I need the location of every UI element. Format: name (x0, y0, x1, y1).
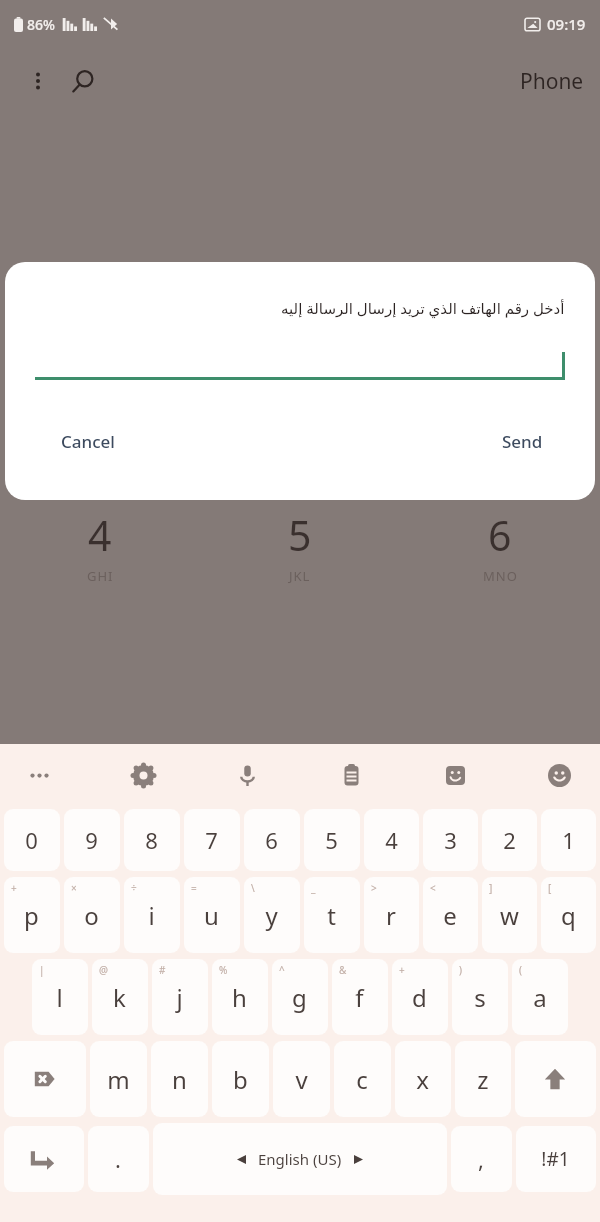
button[interactable]: ^ (272, 959, 328, 1035)
staticText: & (339, 963, 347, 977)
staticText: MNO (483, 567, 518, 585)
staticText: , (478, 1144, 484, 1174)
staticText: e (443, 899, 457, 932)
staticText: . (115, 1144, 121, 1174)
button[interactable]: 4 (0, 474, 200, 618)
button[interactable]: > (364, 877, 419, 953)
button[interactable]: 8 (124, 809, 180, 871)
staticText: t (327, 899, 336, 932)
staticText: l (56, 981, 63, 1014)
button[interactable]: & (332, 959, 388, 1035)
staticText: u (204, 899, 219, 932)
staticText: 5 (325, 825, 338, 855)
button[interactable]: Shift (515, 1041, 596, 1117)
staticText: y (265, 899, 278, 932)
button[interactable]: 6 (244, 809, 300, 871)
button[interactable]: Clipboard (330, 753, 374, 797)
button[interactable]: , (451, 1126, 512, 1192)
button[interactable]: ) (452, 959, 508, 1035)
staticText: j (176, 981, 183, 1014)
button[interactable]: Phone (520, 67, 584, 96)
button[interactable]: Search (60, 58, 106, 104)
staticText: _ (311, 881, 316, 895)
button[interactable]: Backspace (4, 1041, 86, 1117)
button[interactable]: Enter (4, 1126, 84, 1192)
button[interactable]: Voice input (226, 753, 270, 797)
button[interactable]: @ (92, 959, 148, 1035)
button[interactable]: \ (244, 877, 300, 953)
button[interactable]: # (152, 959, 208, 1035)
staticText: @ (99, 963, 108, 977)
button[interactable]: ( (512, 959, 568, 1035)
staticText: | (39, 963, 45, 977)
button[interactable]: 4 (364, 809, 419, 871)
button[interactable]: 9 (64, 809, 120, 871)
staticText: 86% (27, 15, 55, 34)
button[interactable]: 1 (541, 809, 596, 871)
staticText: ∞ (94, 425, 106, 440)
button[interactable]: b (212, 1041, 269, 1117)
staticText: ( (519, 963, 522, 977)
staticText: 7 (205, 825, 218, 855)
button[interactable]: Send (488, 422, 557, 461)
staticText: w (500, 899, 519, 932)
staticText: 4 (385, 825, 398, 855)
staticText: 2 (503, 825, 516, 855)
button[interactable]: + (4, 877, 60, 953)
button[interactable]: 1 (0, 330, 200, 474)
button[interactable]: 2 (200, 330, 400, 474)
staticText: q (561, 899, 576, 932)
button[interactable]: + (392, 959, 448, 1035)
staticText: ^ (279, 963, 285, 977)
button[interactable]: % (212, 959, 268, 1035)
button[interactable]: English (US) (153, 1123, 447, 1195)
button[interactable]: Settings (122, 753, 166, 797)
button[interactable]: c (334, 1041, 391, 1117)
button[interactable]: < (423, 877, 478, 953)
button[interactable]: Emoji (538, 753, 582, 797)
button[interactable]: v (273, 1041, 330, 1117)
button[interactable]: x (395, 1041, 451, 1117)
button[interactable]: ÷ (124, 877, 180, 953)
staticText: × (71, 881, 77, 895)
button[interactable]: = (184, 877, 240, 953)
button[interactable]: 5 (200, 474, 400, 618)
button[interactable]: More options (16, 59, 60, 103)
staticText: Cancel (61, 430, 115, 453)
button[interactable]: 0 (4, 809, 60, 871)
staticText: 09:19 (547, 14, 586, 34)
staticText: n (172, 1063, 187, 1096)
button[interactable]: n (151, 1041, 208, 1117)
button[interactable]: | (32, 959, 88, 1035)
staticText: 8 (145, 825, 158, 855)
button[interactable]: m (90, 1041, 147, 1117)
staticText: 4 (88, 507, 112, 563)
button[interactable]: 6 (400, 474, 600, 618)
staticText: ) (459, 963, 462, 977)
staticText: f (355, 981, 364, 1014)
staticText: z (477, 1063, 489, 1096)
button[interactable]: More (18, 753, 62, 797)
button[interactable]: Stickers (434, 753, 478, 797)
button[interactable]: ] (482, 877, 537, 953)
button[interactable]: 5 (304, 809, 360, 871)
button[interactable]: _ (304, 877, 360, 953)
staticText: p (24, 899, 39, 932)
button[interactable]: 3 (400, 330, 600, 474)
staticText: 9 (85, 825, 98, 855)
staticText: > (371, 881, 377, 895)
button[interactable]: z (455, 1041, 511, 1117)
button[interactable]: [ (541, 877, 596, 953)
button[interactable]: . (88, 1126, 149, 1192)
button[interactable]: Cancel (47, 422, 129, 461)
staticText: 0 (25, 825, 38, 855)
button[interactable]: 7 (184, 809, 240, 871)
staticText: m (107, 1063, 130, 1096)
button[interactable]: 2 (482, 809, 537, 871)
staticText: d (412, 981, 427, 1014)
staticText: # (159, 963, 166, 977)
button[interactable]: !#1 (516, 1126, 596, 1192)
button[interactable]: × (64, 877, 120, 953)
button[interactable]: 3 (423, 809, 478, 871)
